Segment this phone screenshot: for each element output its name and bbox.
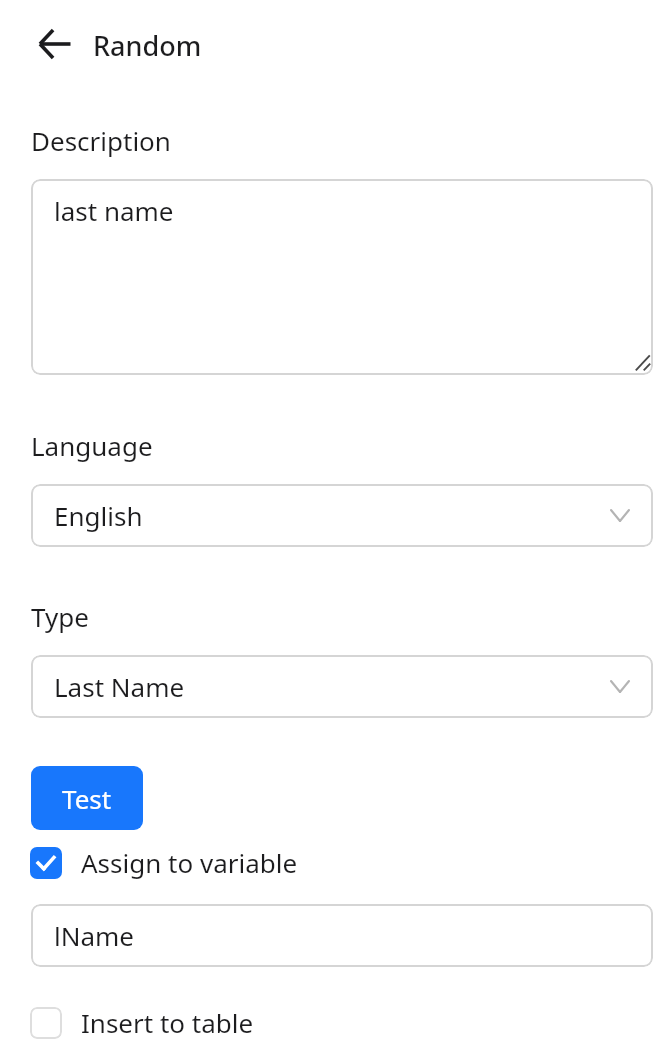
button[interactable]: English (31, 484, 653, 547)
staticText: Random (93, 27, 202, 64)
staticText: Description (31, 123, 171, 158)
staticText: Last Name (54, 669, 185, 704)
button[interactable]: Test (31, 766, 143, 830)
staticText: Assign to variable (81, 845, 298, 880)
staticText: Language (31, 428, 153, 463)
staticText: last name (54, 193, 174, 228)
staticText: lName (54, 918, 135, 953)
button[interactable]: last name (31, 179, 653, 375)
button[interactable]: Insert to table (30, 1005, 254, 1040)
staticText: Insert to table (81, 1005, 254, 1040)
button[interactable]: Assign to variable (30, 845, 298, 880)
staticText: English (54, 498, 143, 533)
button[interactable]: Back (31, 20, 79, 68)
staticText: Type (31, 599, 89, 634)
button[interactable]: lName (31, 904, 653, 967)
button[interactable]: Last Name (31, 655, 653, 718)
staticText: Test (62, 781, 112, 816)
